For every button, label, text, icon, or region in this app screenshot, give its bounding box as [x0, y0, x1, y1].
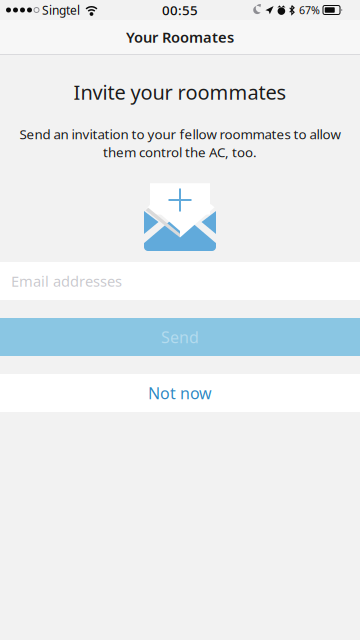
staticText: Send: [161, 326, 199, 348]
button[interactable]: Not now: [0, 374, 360, 412]
staticText: Email addresses: [11, 271, 122, 291]
staticText: 67%: [299, 3, 320, 17]
staticText: Singtel: [42, 2, 80, 18]
staticText: them control the AC, too.: [103, 143, 257, 161]
staticText: Your Roomates: [126, 27, 234, 47]
staticText: 00:55: [162, 1, 198, 19]
staticText: Invite your roommates: [73, 79, 286, 105]
staticText: Not now: [148, 382, 212, 404]
button[interactable]: Send: [0, 318, 360, 356]
staticText: Send an invitation to your fellow roomma…: [19, 125, 340, 143]
